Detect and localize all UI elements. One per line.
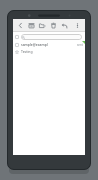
button[interactable] bbox=[13, 32, 85, 41]
button[interactable]: Move to folder bbox=[37, 19, 48, 32]
staticText: sent bbox=[77, 43, 83, 47]
staticText: sample@example.domain.net bbox=[21, 42, 49, 47]
button[interactable]: Delete bbox=[48, 19, 59, 32]
button[interactable]: Back bbox=[15, 19, 26, 32]
button[interactable]: Testing bbox=[13, 48, 85, 55]
button[interactable]: Archive bbox=[26, 19, 37, 32]
button[interactable]: Reply bbox=[59, 19, 70, 32]
staticText: Testing bbox=[21, 49, 33, 54]
button[interactable]: More options bbox=[72, 19, 83, 32]
button[interactable]: sample@example.domain.net bbox=[13, 41, 85, 48]
